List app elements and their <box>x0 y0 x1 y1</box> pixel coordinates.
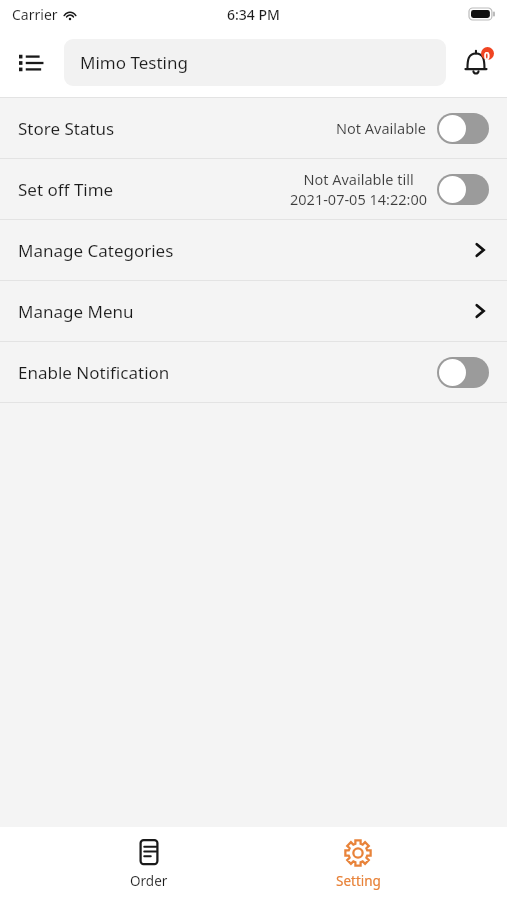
button[interactable]: Store Status <box>0 98 507 158</box>
staticText: Setting <box>336 872 381 890</box>
button[interactable]: Toggle <box>437 113 489 144</box>
staticText: Not Available <box>336 118 427 138</box>
staticText: Manage Categories <box>18 239 174 262</box>
staticText: Not Available till <box>303 169 414 189</box>
button[interactable]: Setting <box>298 827 418 900</box>
button[interactable]: Menu <box>8 39 56 87</box>
button[interactable]: Mimo Testing <box>64 39 446 86</box>
staticText: Enable Notification <box>18 361 170 384</box>
button[interactable]: Toggle <box>437 357 489 388</box>
button[interactable]: Toggle <box>437 174 489 205</box>
staticText: Set off Time <box>18 178 114 201</box>
staticText: 6:34 PM <box>227 5 280 24</box>
staticText: Store Status <box>18 117 115 140</box>
staticText: Mimo Testing <box>80 51 188 74</box>
staticText: 2021-07-05 14:22:00 <box>290 189 427 209</box>
staticText: Carrier <box>12 5 58 24</box>
button[interactable]: Manage Menu <box>0 281 507 341</box>
button[interactable]: Order <box>89 827 209 900</box>
staticText: Order <box>130 872 168 890</box>
staticText: 0 <box>484 49 490 63</box>
staticText: Manage Menu <box>18 300 134 323</box>
button[interactable]: Set off Time <box>0 159 507 219</box>
button[interactable]: Manage Categories <box>0 220 507 280</box>
button[interactable]: Notifications <box>455 40 501 86</box>
button[interactable]: Enable Notification <box>0 342 507 402</box>
